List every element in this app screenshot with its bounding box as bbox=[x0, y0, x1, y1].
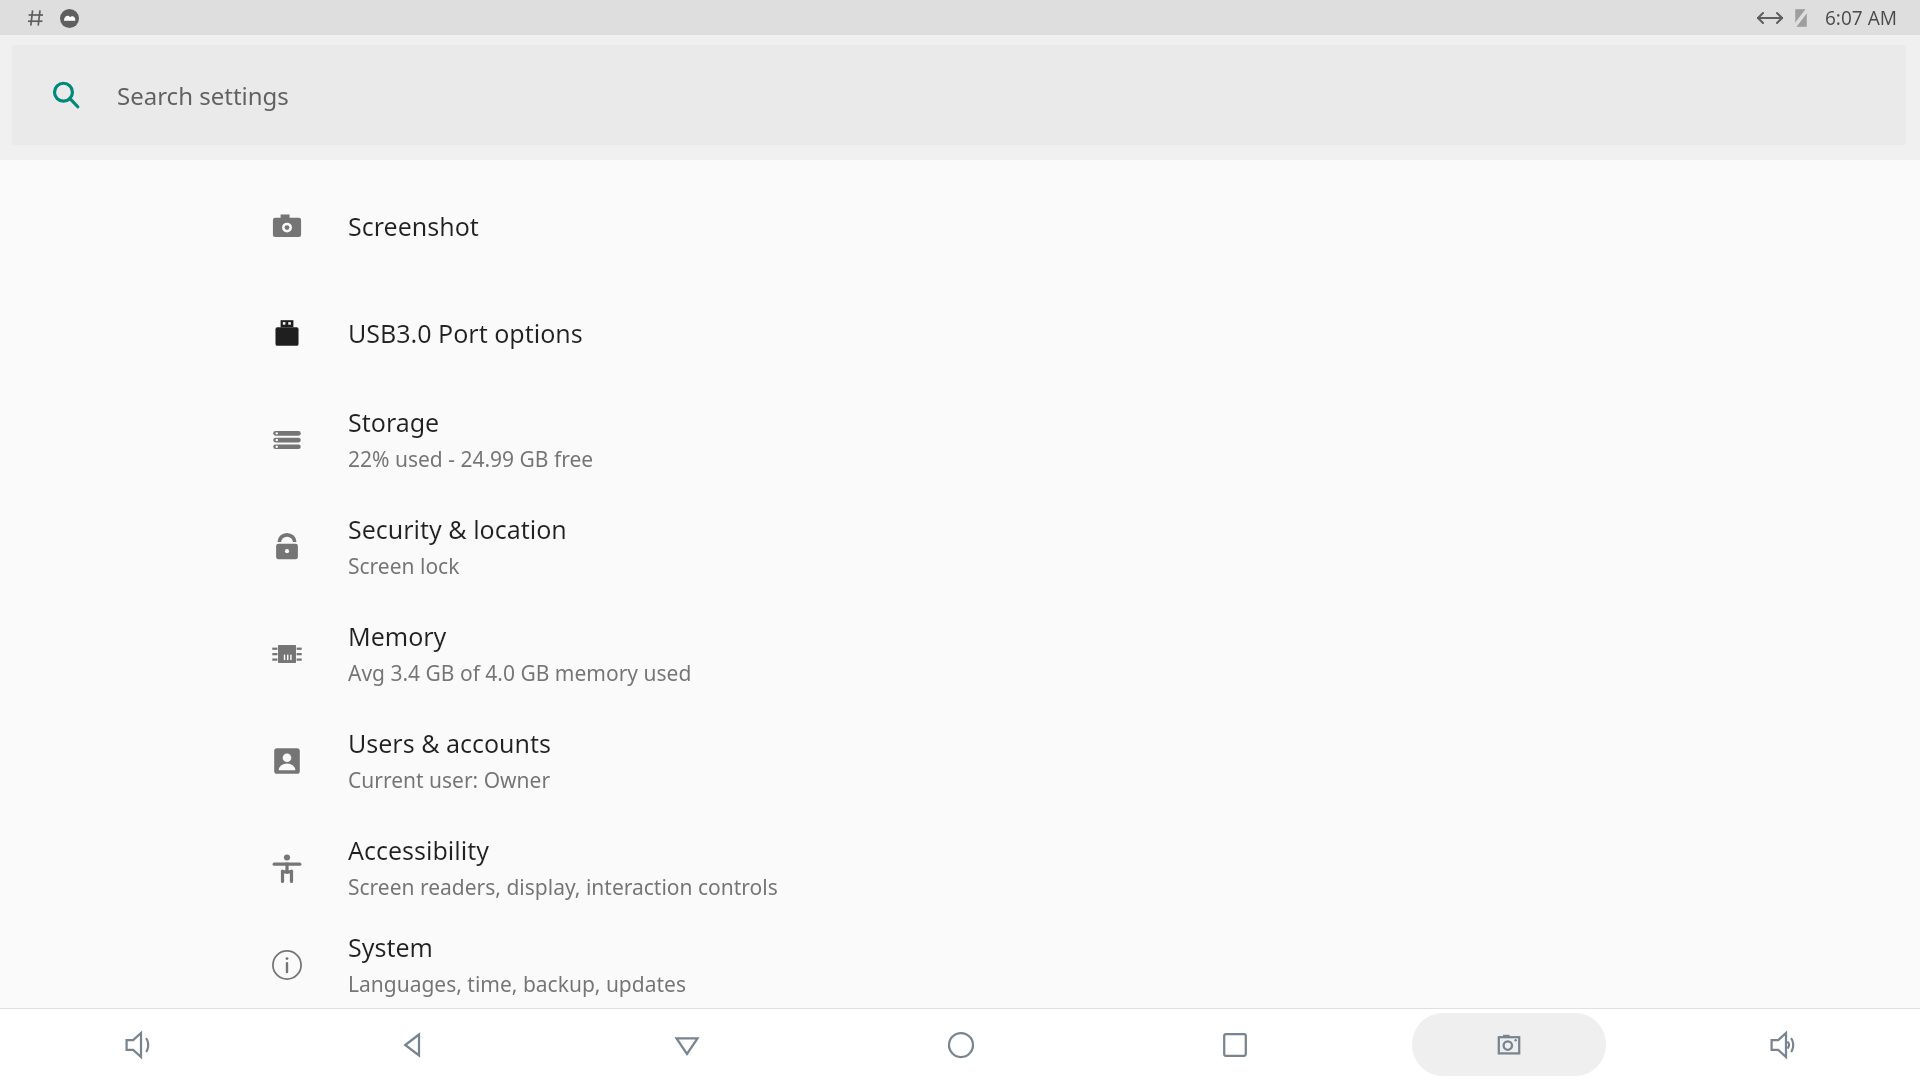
button[interactable]: System bbox=[0, 921, 1920, 1008]
button[interactable]: Screenshot bbox=[0, 172, 1920, 279]
staticText: Users & accounts bbox=[348, 726, 552, 760]
button[interactable]: Volume up bbox=[1686, 1013, 1880, 1076]
staticText: USB3.0 Port options bbox=[348, 316, 583, 350]
staticText: System bbox=[348, 930, 433, 964]
staticText: Screen lock bbox=[348, 552, 460, 581]
staticText: Search settings bbox=[117, 79, 289, 112]
button[interactable]: Users & accounts bbox=[0, 707, 1920, 814]
staticText: Memory bbox=[348, 619, 447, 653]
staticText: Accessibility bbox=[348, 833, 489, 867]
button[interactable]: Home bbox=[864, 1013, 1058, 1076]
button[interactable]: USB3.0 Port options bbox=[0, 279, 1920, 386]
staticText: Current user: Owner bbox=[348, 766, 551, 795]
button[interactable]: Screenshot bbox=[1412, 1013, 1606, 1076]
staticText: 6:07 AM bbox=[1825, 5, 1898, 31]
button[interactable]: Memory bbox=[0, 600, 1920, 707]
button[interactable]: Recent apps bbox=[1138, 1013, 1332, 1076]
button[interactable]: Hide keyboard bbox=[590, 1013, 784, 1076]
staticText: Avg 3.4 GB of 4.0 GB memory used bbox=[348, 659, 692, 688]
staticText: Storage bbox=[348, 405, 440, 439]
button[interactable]: Storage bbox=[0, 386, 1920, 493]
staticText: Security & location bbox=[348, 512, 567, 546]
staticText: Languages, time, backup, updates bbox=[348, 970, 686, 999]
staticText: Screen readers, display, interaction con… bbox=[348, 873, 778, 902]
button[interactable]: Security & location bbox=[0, 493, 1920, 600]
button[interactable]: Back bbox=[316, 1013, 510, 1076]
button[interactable]: Volume down bbox=[41, 1013, 235, 1076]
button[interactable]: Accessibility bbox=[0, 814, 1920, 921]
staticText: 22% used - 24.99 GB free bbox=[348, 445, 594, 474]
button[interactable]: Search settings bbox=[12, 45, 1906, 145]
staticText: Screenshot bbox=[348, 209, 479, 243]
